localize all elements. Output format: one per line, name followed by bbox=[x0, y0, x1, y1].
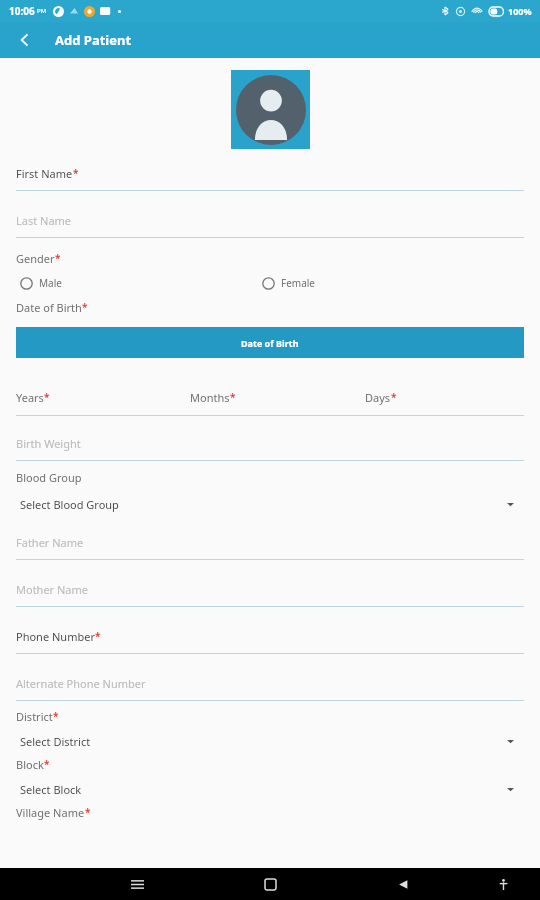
button[interactable]: Father Name bbox=[0, 535, 540, 560]
button[interactable]: Accessibility bbox=[492, 873, 514, 895]
button[interactable]: Back bbox=[12, 27, 38, 53]
staticText: Select Block bbox=[20, 782, 82, 797]
staticText: Days bbox=[365, 390, 391, 405]
staticText: * bbox=[95, 629, 101, 643]
button[interactable]: Select District bbox=[0, 730, 540, 752]
button[interactable]: Last Name bbox=[0, 213, 540, 238]
staticText: Last Name bbox=[16, 213, 72, 228]
staticText: Father Name bbox=[16, 535, 84, 550]
staticText: Select District bbox=[20, 734, 91, 749]
staticText: Gender bbox=[16, 251, 55, 266]
staticText: Select Blood Group bbox=[20, 497, 119, 512]
staticText: First Name bbox=[16, 166, 73, 181]
staticText: District bbox=[16, 709, 53, 724]
button[interactable]: First Name bbox=[0, 166, 540, 191]
staticText: * bbox=[230, 390, 236, 404]
button[interactable]: Female bbox=[262, 276, 316, 290]
staticText: * bbox=[85, 805, 91, 819]
staticText: * bbox=[55, 251, 61, 265]
button[interactable]: Menu bbox=[124, 871, 150, 897]
staticText: Female bbox=[281, 276, 316, 290]
button[interactable]: Home bbox=[257, 871, 283, 897]
button[interactable]: Male bbox=[20, 276, 62, 290]
button[interactable]: Mother Name bbox=[0, 582, 540, 607]
button[interactable]: Date of Birth bbox=[16, 327, 524, 358]
staticText: Mother Name bbox=[16, 582, 89, 597]
staticText: * bbox=[82, 300, 88, 314]
staticText: Block bbox=[16, 757, 44, 772]
staticText: * bbox=[73, 166, 79, 180]
button[interactable]: Back bbox=[390, 871, 416, 897]
button[interactable]: Phone Number bbox=[0, 629, 540, 654]
button[interactable]: Alternate Phone Number bbox=[0, 676, 540, 701]
button[interactable]: Patient photo bbox=[231, 70, 310, 149]
button[interactable]: Select Block bbox=[0, 778, 540, 800]
staticText: Add Patient bbox=[55, 31, 132, 49]
staticText: Months bbox=[190, 390, 230, 405]
staticText: Date of Birth bbox=[241, 337, 299, 349]
button[interactable]: Select Blood Group bbox=[0, 493, 540, 515]
staticText: PM bbox=[37, 7, 47, 15]
staticText: * bbox=[44, 390, 50, 404]
staticText: * bbox=[44, 757, 50, 771]
staticText: * bbox=[53, 709, 59, 723]
staticText: Years bbox=[16, 390, 44, 405]
staticText: 10:06 bbox=[9, 4, 35, 18]
staticText: 100% bbox=[508, 5, 532, 17]
button[interactable]: Birth Weight bbox=[0, 436, 540, 461]
staticText: Blood Group bbox=[16, 470, 82, 485]
staticText: Birth Weight bbox=[16, 436, 81, 451]
staticText: Male bbox=[39, 276, 62, 290]
staticText: Date of Birth bbox=[16, 300, 82, 315]
staticText: Alternate Phone Number bbox=[16, 676, 146, 691]
staticText: * bbox=[391, 390, 397, 404]
staticText: Phone Number bbox=[16, 629, 95, 644]
staticText: Village Name bbox=[16, 805, 85, 820]
